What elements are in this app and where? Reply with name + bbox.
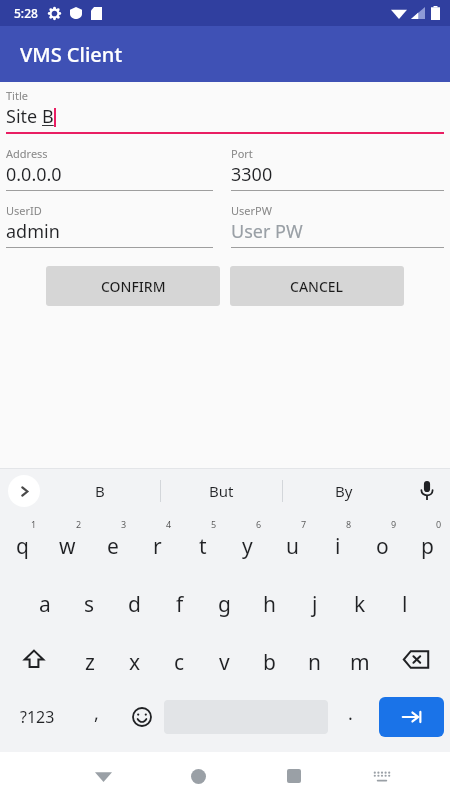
staticText: r xyxy=(153,532,162,561)
button[interactable]: y xyxy=(225,514,270,572)
staticText: CONFIRM xyxy=(101,277,166,296)
staticText: y xyxy=(242,532,253,561)
button[interactable]: v xyxy=(202,630,247,688)
button[interactable]: Backspace xyxy=(382,630,450,688)
button[interactable]: o xyxy=(360,514,405,572)
button[interactable]: Recent apps xyxy=(246,752,341,800)
staticText: 8 xyxy=(346,518,352,530)
staticText: i xyxy=(335,532,341,561)
staticText: 3300 xyxy=(231,162,273,187)
button[interactable]: Switch keyboard xyxy=(341,752,422,800)
staticText: ?123 xyxy=(20,706,55,728)
staticText: , xyxy=(94,701,99,726)
button[interactable]: h xyxy=(247,572,292,630)
button[interactable]: . xyxy=(328,688,373,746)
staticText: Title xyxy=(6,88,28,103)
staticText: p xyxy=(421,532,434,561)
button[interactable]: B xyxy=(40,468,160,514)
staticText: UserID xyxy=(6,203,42,218)
button[interactable]: t xyxy=(180,514,225,572)
staticText: o xyxy=(376,532,389,561)
staticText: w xyxy=(59,532,76,561)
button[interactable]: j xyxy=(292,572,337,630)
staticText: admin xyxy=(6,219,60,244)
staticText: 5:28 xyxy=(14,5,38,21)
staticText: CANCEL xyxy=(290,277,344,296)
staticText: g xyxy=(218,590,231,619)
button[interactable]: z xyxy=(67,630,112,688)
button[interactable]: g xyxy=(202,572,247,630)
staticText: s xyxy=(84,590,95,619)
button[interactable]: Hide keyboard xyxy=(56,752,151,800)
button[interactable]: ?123 xyxy=(0,688,74,746)
button[interactable]: CANCEL xyxy=(230,266,404,306)
button[interactable]: m xyxy=(337,630,382,688)
button[interactable]: e xyxy=(90,514,135,572)
button[interactable]: , xyxy=(74,688,119,746)
button[interactable]: l xyxy=(382,572,427,630)
button[interactable]: p xyxy=(405,514,450,572)
button[interactable]: Home xyxy=(151,752,246,800)
staticText: v xyxy=(219,648,230,677)
staticText: n xyxy=(308,648,321,677)
button[interactable]: k xyxy=(337,572,382,630)
staticText: 0.0.0.0 xyxy=(6,162,62,187)
button[interactable]: f xyxy=(157,572,202,630)
button[interactable]: w xyxy=(45,514,90,572)
staticText: 5 xyxy=(211,518,217,530)
staticText: e xyxy=(107,532,119,561)
staticText: . xyxy=(348,701,353,726)
staticText: Port xyxy=(231,146,253,161)
staticText: j xyxy=(312,590,318,619)
button[interactable]: n xyxy=(292,630,337,688)
staticText: By xyxy=(335,481,353,501)
staticText: 2 xyxy=(76,518,82,530)
staticText: Address xyxy=(6,146,48,161)
staticText: l xyxy=(402,590,408,619)
button[interactable]: CONFIRM xyxy=(46,266,220,306)
staticText: f xyxy=(176,590,184,619)
staticText: User PW xyxy=(231,219,303,244)
button[interactable]: Emoji xyxy=(119,688,164,746)
button[interactable]: Shift xyxy=(0,630,67,688)
staticText: q xyxy=(16,532,29,561)
button[interactable]: By xyxy=(283,468,404,514)
staticText: a xyxy=(39,590,51,619)
staticText: 4 xyxy=(166,518,172,530)
staticText: But xyxy=(209,481,234,501)
staticText: t xyxy=(199,532,207,561)
button[interactable]: q xyxy=(0,514,45,572)
button[interactable]: Expand suggestions xyxy=(8,475,40,507)
staticText: Site xyxy=(6,104,42,129)
staticText: 6 xyxy=(256,518,262,530)
staticText: c xyxy=(174,648,185,677)
staticText: B xyxy=(95,481,105,501)
staticText: 3 xyxy=(121,518,127,530)
staticText: b xyxy=(263,648,276,677)
staticText: UserPW xyxy=(231,203,272,218)
staticText: VMS Client xyxy=(20,41,123,68)
button[interactable]: b xyxy=(247,630,292,688)
button[interactable]: Next field xyxy=(379,697,444,737)
button[interactable]: c xyxy=(157,630,202,688)
button[interactable]: d xyxy=(112,572,157,630)
staticText: B xyxy=(42,104,54,129)
button[interactable]: u xyxy=(270,514,315,572)
button[interactable]: Voice input xyxy=(404,468,450,514)
staticText: z xyxy=(85,648,95,677)
staticText: d xyxy=(128,590,141,619)
button[interactable]: x xyxy=(112,630,157,688)
button[interactable]: But xyxy=(161,468,282,514)
staticText: 7 xyxy=(301,518,307,530)
button[interactable]: r xyxy=(135,514,180,572)
staticText: 0 xyxy=(436,518,442,530)
staticText: k xyxy=(354,590,366,619)
staticText: m xyxy=(350,648,370,677)
button[interactable]: a xyxy=(22,572,67,630)
staticText: 9 xyxy=(391,518,397,530)
staticText: x xyxy=(129,648,141,677)
staticText: u xyxy=(286,532,299,561)
button[interactable]: s xyxy=(67,572,112,630)
button[interactable]: i xyxy=(315,514,360,572)
